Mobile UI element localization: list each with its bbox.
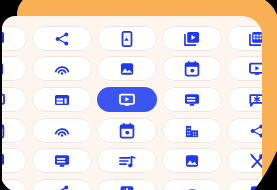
button[interactable]: tvlist xyxy=(162,87,222,112)
button[interactable]: imgstar xyxy=(97,179,157,190)
button[interactable]: image xyxy=(2,179,27,190)
button[interactable]: tvplay xyxy=(2,87,27,112)
button[interactable]: pdf xyxy=(227,26,262,51)
button[interactable]: tvlist xyxy=(32,148,92,173)
button[interactable]: wifi xyxy=(32,56,92,81)
button[interactable]: share xyxy=(32,26,92,51)
button[interactable]: wifi xyxy=(32,118,92,143)
button[interactable]: tvplay xyxy=(97,87,157,112)
button[interactable]: videolib xyxy=(2,26,27,51)
button[interactable]: pdf xyxy=(2,148,27,173)
button[interactable]: calendar xyxy=(2,118,27,143)
button[interactable]: wifi xyxy=(162,179,222,190)
button[interactable]: image xyxy=(162,148,222,173)
button[interactable]: image xyxy=(2,56,27,81)
button[interactable]: web xyxy=(32,87,92,112)
button[interactable]: image xyxy=(97,56,157,81)
button[interactable]: share xyxy=(227,118,262,143)
button[interactable]: videolib xyxy=(162,26,222,51)
button[interactable]: tvplay xyxy=(227,56,262,81)
button[interactable]: phone xyxy=(97,26,157,51)
button[interactable]: calendar xyxy=(162,56,222,81)
button[interactable]: chat xyxy=(227,87,262,112)
button[interactable]: food xyxy=(227,148,262,173)
button[interactable]: building xyxy=(162,118,222,143)
button[interactable]: playlist xyxy=(97,148,157,173)
button[interactable]: calendar xyxy=(97,118,157,143)
button[interactable]: image xyxy=(227,179,262,190)
button[interactable]: share xyxy=(32,179,92,190)
